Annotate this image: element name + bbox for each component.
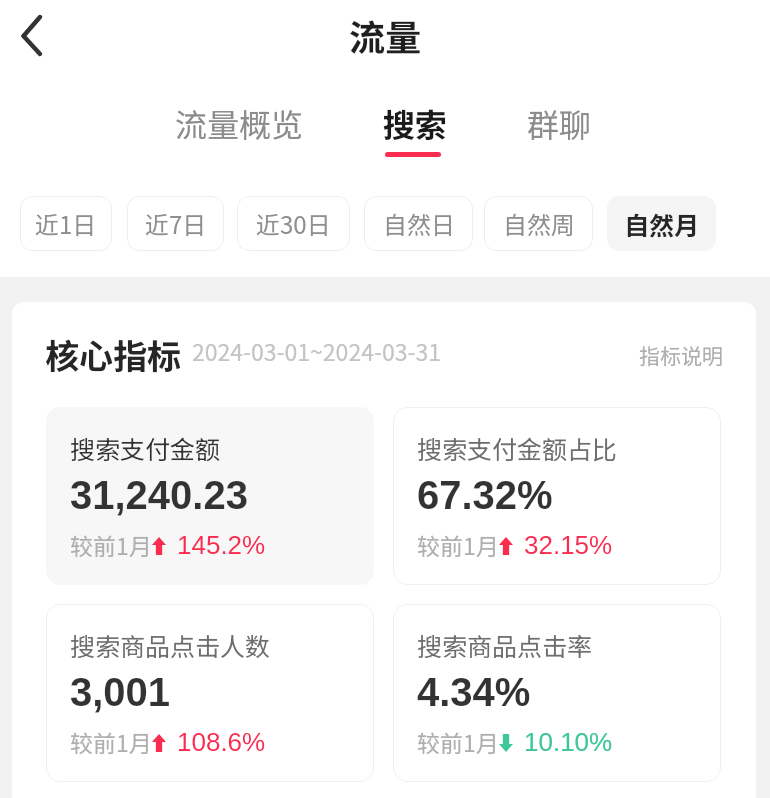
staticText: 搜索支付金额占比	[417, 430, 618, 466]
staticText: 较前1月	[70, 528, 152, 561]
button[interactable]: 近30日	[237, 196, 350, 251]
button[interactable]: 流量概览	[164, 100, 314, 162]
button[interactable]: 近1日	[20, 196, 112, 251]
button[interactable]: 指标说明	[639, 340, 723, 370]
staticText: 10.10%	[524, 727, 613, 756]
staticText: 2024-03-01~2024-03-31	[192, 334, 441, 367]
staticText: 145.2%	[177, 530, 266, 559]
staticText: 搜索商品点击人数	[70, 627, 271, 663]
button[interactable]: 搜索	[360, 100, 470, 162]
staticText: 近30日	[256, 206, 331, 241]
staticText: 67.32%	[417, 473, 553, 518]
button[interactable]: 搜索支付金额	[46, 407, 374, 585]
button[interactable]: 搜索支付金额占比	[393, 407, 721, 585]
staticText: 流量概览	[175, 100, 304, 146]
staticText: 流量	[349, 9, 422, 61]
staticText: 较前1月	[417, 725, 499, 758]
button[interactable]: 自然周	[484, 196, 593, 251]
staticText: 自然月	[624, 206, 700, 242]
staticText: 32.15%	[524, 530, 613, 559]
button[interactable]: 自然日	[364, 196, 473, 251]
button[interactable]: 近7日	[127, 196, 224, 251]
button[interactable]: 搜索商品点击率	[393, 604, 721, 782]
staticText: 自然周	[503, 206, 575, 241]
staticText: 群聊	[527, 100, 592, 146]
staticText: 4.34%	[417, 670, 531, 715]
staticText: 搜索支付金额	[70, 430, 221, 466]
button[interactable]: 群聊	[504, 100, 614, 162]
button[interactable]: 自然月	[607, 196, 716, 251]
staticText: 近7日	[145, 206, 207, 241]
staticText: 搜索	[383, 100, 448, 146]
staticText: 108.6%	[177, 727, 266, 756]
staticText: 31,240.23	[70, 473, 248, 518]
staticText: 核心指标	[45, 330, 181, 379]
staticText: 较前1月	[417, 528, 499, 561]
button[interactable]: Back	[8, 4, 70, 66]
staticText: 3,001	[70, 670, 171, 715]
staticText: 较前1月	[70, 725, 152, 758]
staticText: 指标说明	[639, 340, 723, 370]
staticText: 搜索商品点击率	[417, 627, 593, 663]
staticText: 自然日	[383, 206, 455, 241]
staticText: 近1日	[35, 206, 97, 241]
button[interactable]: 搜索商品点击人数	[46, 604, 374, 782]
